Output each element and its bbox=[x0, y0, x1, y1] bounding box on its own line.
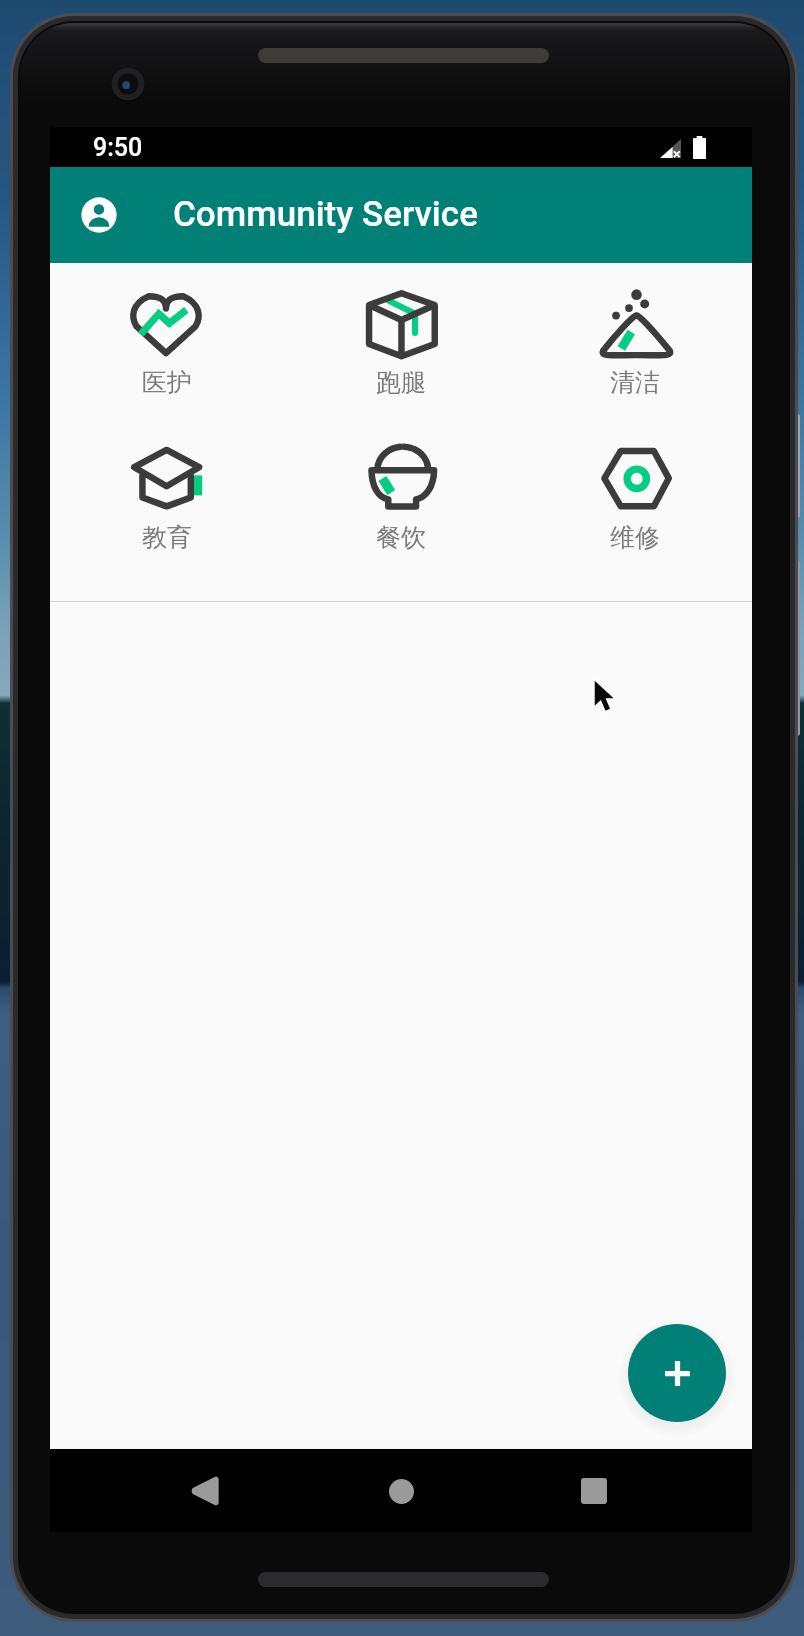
button[interactable]: Home bbox=[372, 1462, 430, 1520]
button[interactable]: 清洁 bbox=[518, 263, 752, 418]
button[interactable]: 跑腿 bbox=[284, 263, 518, 418]
button[interactable]: Recent apps bbox=[565, 1462, 623, 1520]
button[interactable]: 餐饮 bbox=[284, 418, 518, 573]
staticText: 餐饮 bbox=[376, 522, 426, 553]
button[interactable]: Back bbox=[175, 1462, 233, 1520]
staticText: 清洁 bbox=[610, 367, 660, 398]
staticText: 维修 bbox=[610, 522, 660, 553]
staticText: 教育 bbox=[142, 522, 192, 553]
staticText: Community Service bbox=[173, 194, 478, 235]
staticText: 9:50 bbox=[93, 133, 143, 162]
button[interactable]: 医护 bbox=[50, 263, 284, 418]
button[interactable]: 教育 bbox=[50, 418, 284, 573]
button[interactable]: 维修 bbox=[518, 418, 752, 573]
button[interactable]: Add bbox=[628, 1324, 726, 1422]
button[interactable]: Account bbox=[73, 189, 125, 241]
staticText: 跑腿 bbox=[376, 367, 426, 398]
staticText: 医护 bbox=[142, 367, 192, 398]
